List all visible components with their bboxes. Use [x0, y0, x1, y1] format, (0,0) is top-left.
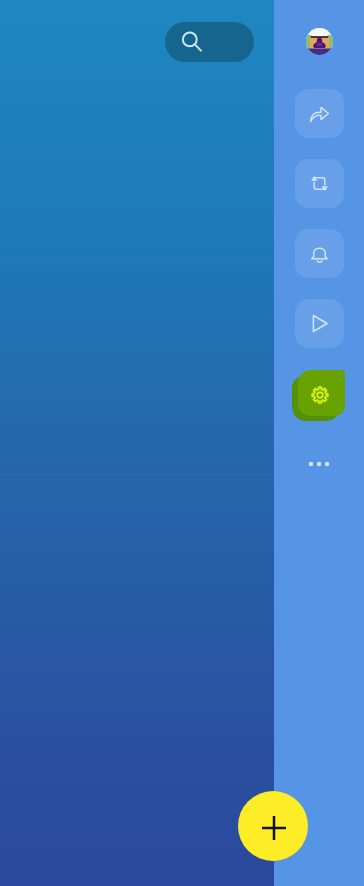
button[interactable]: Play: [295, 299, 344, 348]
button[interactable]: Repeat: [295, 159, 344, 208]
button[interactable]: Notifications: [295, 229, 344, 278]
button[interactable]: Add: [238, 791, 308, 861]
button[interactable]: Settings: [293, 372, 346, 422]
button[interactable]: Profile: [306, 28, 333, 55]
button[interactable]: Share: [295, 89, 344, 138]
button[interactable]: More: [297, 452, 341, 476]
button[interactable]: Search: [165, 22, 254, 62]
